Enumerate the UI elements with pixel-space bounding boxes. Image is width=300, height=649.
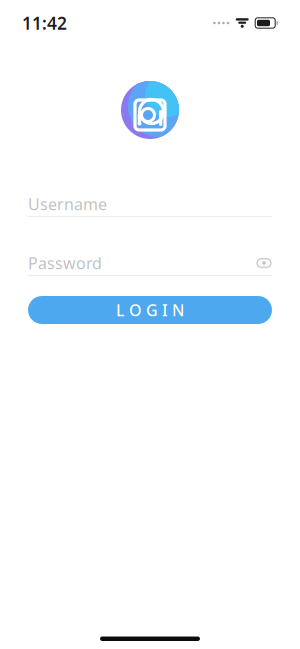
staticText: L O G I N bbox=[116, 299, 184, 321]
staticText: Password bbox=[28, 252, 102, 274]
button[interactable]: Password bbox=[28, 251, 272, 276]
button[interactable]: L O G I N bbox=[28, 296, 272, 324]
button[interactable]: Username bbox=[28, 192, 272, 217]
staticText: 11:42 bbox=[22, 11, 67, 34]
staticText: Username bbox=[28, 193, 107, 215]
